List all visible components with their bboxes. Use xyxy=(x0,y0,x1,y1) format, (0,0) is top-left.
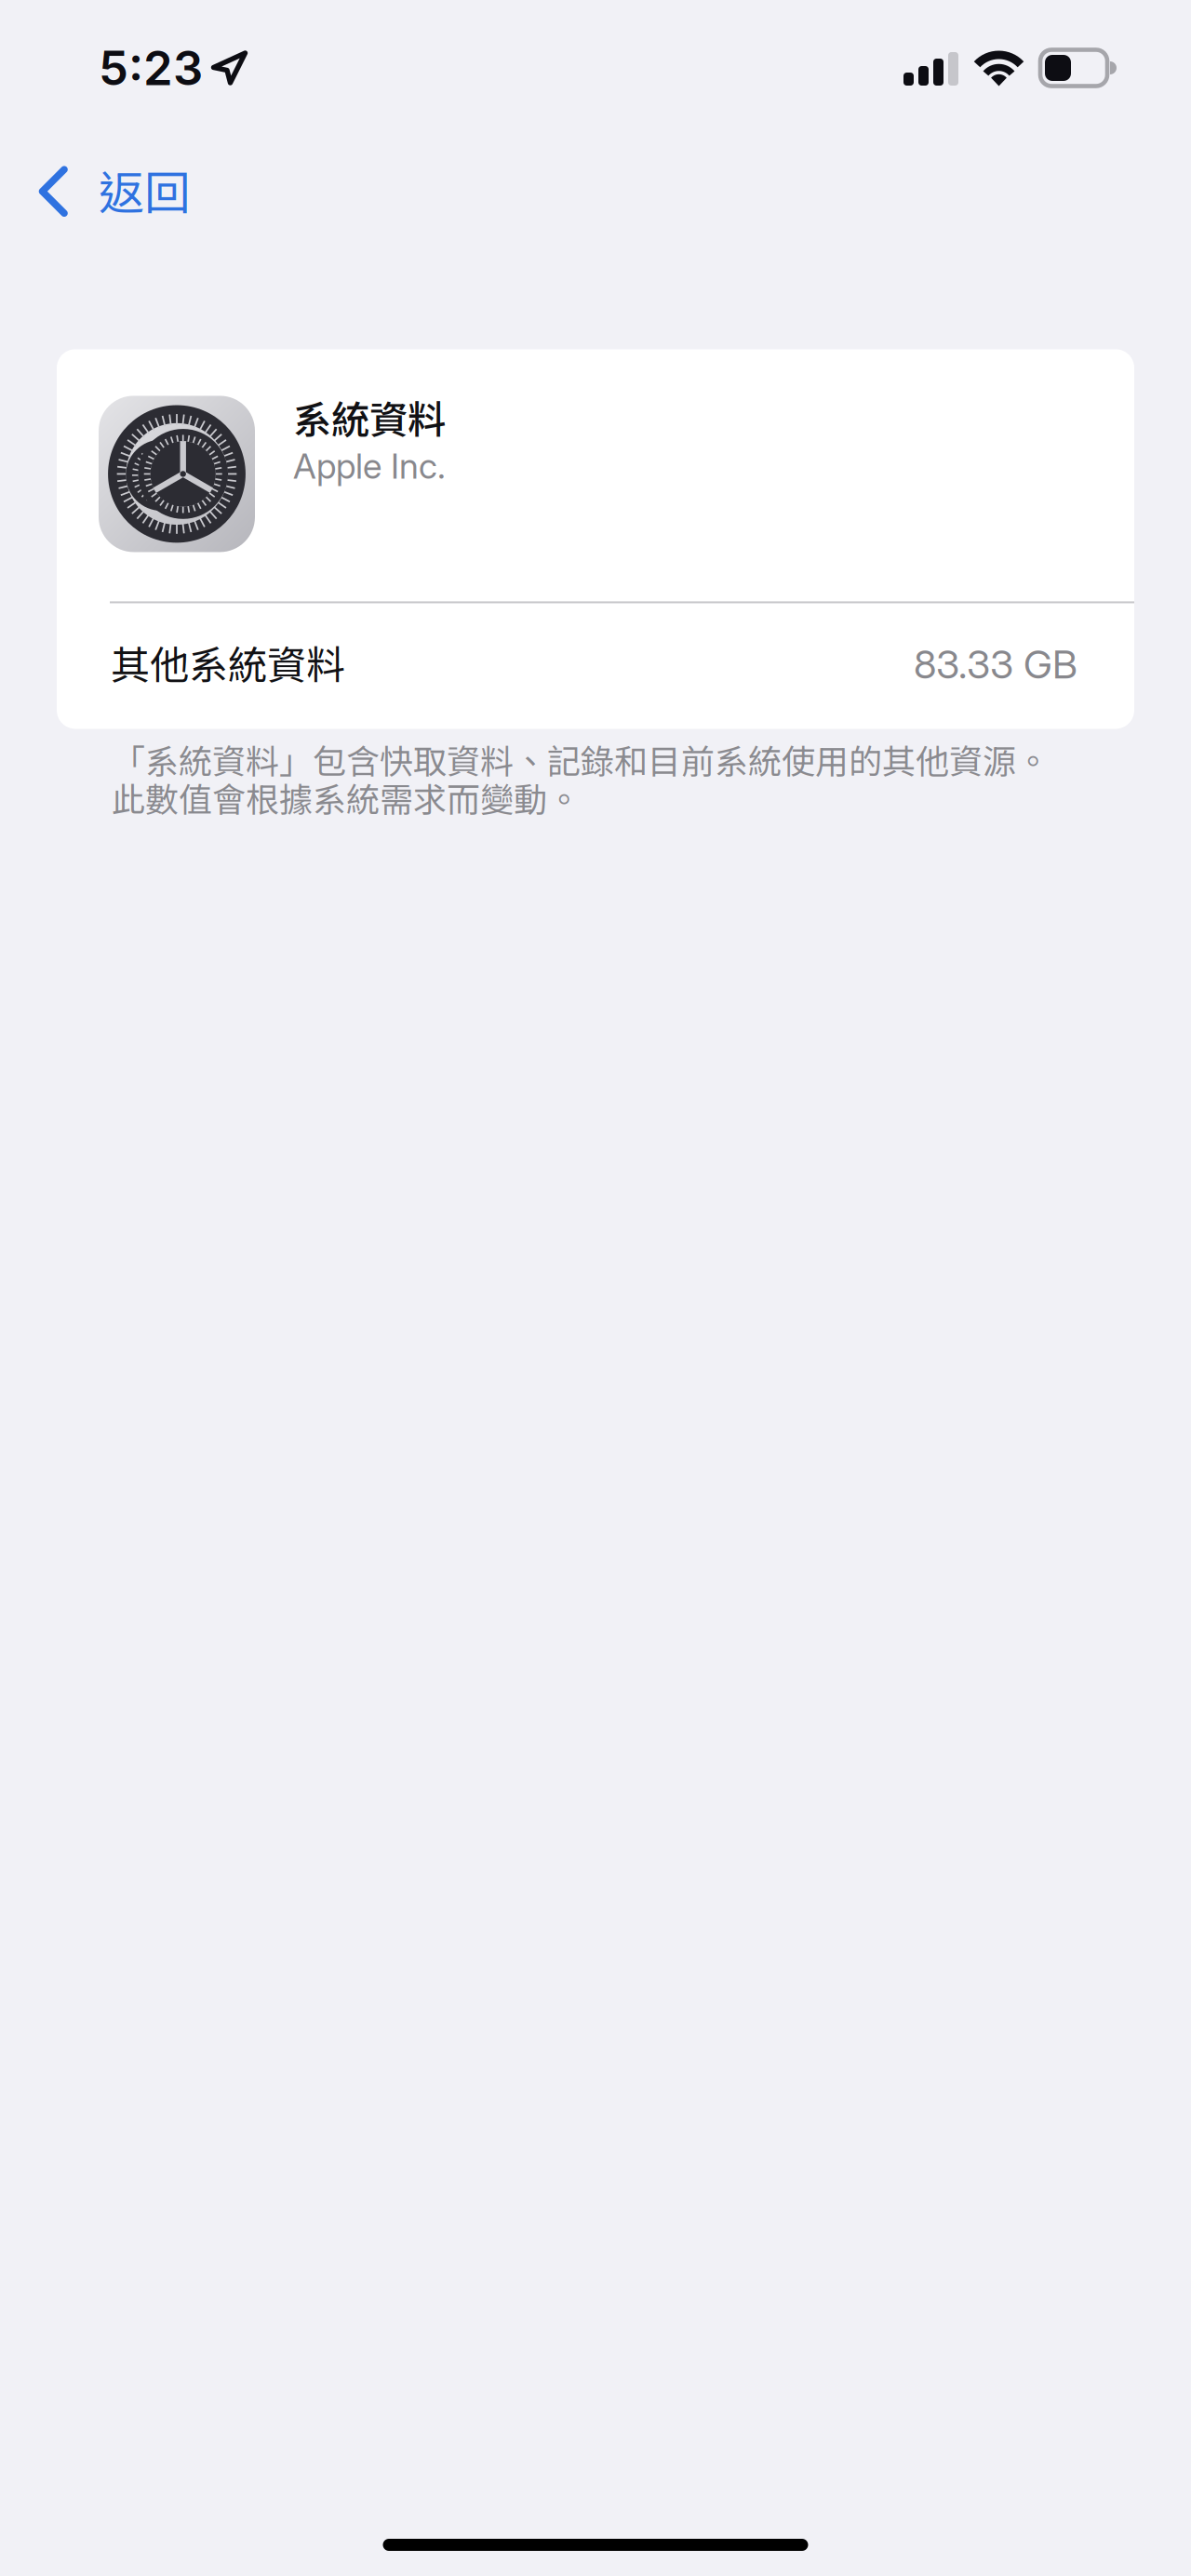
button[interactable]: 其他系統資料 xyxy=(57,603,1134,729)
staticText: 此數值會根據系統需求而變動。 xyxy=(112,773,581,821)
button[interactable]: 返回 xyxy=(0,143,218,243)
staticText: Apple Inc. xyxy=(293,445,446,487)
staticText: 「系統資料」包含快取資料、記錄和目前系統使用的其他資源。 xyxy=(112,735,1050,783)
staticText: 返回 xyxy=(99,156,190,223)
staticText: 83.33 GB xyxy=(914,641,1077,688)
staticText: 系統資料 xyxy=(293,389,446,445)
staticText: 5:23 xyxy=(99,39,203,96)
staticText: 其他系統資料 xyxy=(111,634,345,691)
